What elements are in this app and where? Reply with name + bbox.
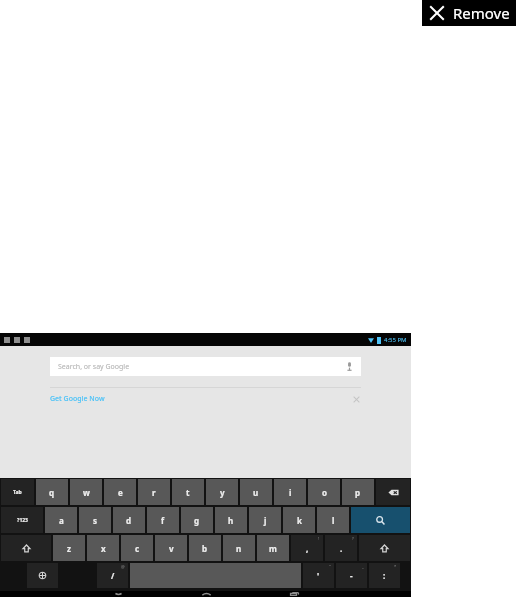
staticText: , [306,543,309,554]
staticText: d [126,515,132,526]
button[interactable]: Backspace [376,479,410,505]
button[interactable]: Change language [27,563,58,588]
button[interactable]: Hide keyboard [89,591,147,597]
staticText: - [350,570,353,581]
staticText: l [332,515,335,526]
button[interactable]: Remove [422,0,516,26]
staticText: e [118,487,123,498]
button[interactable]: / [97,563,128,588]
staticText: i [289,487,292,498]
button[interactable]: x [87,535,119,561]
staticText: y [220,487,225,498]
staticText: _ [362,564,364,569]
button[interactable]: w [70,479,102,505]
staticText: ' [317,570,320,581]
button[interactable]: Get Google Now [50,388,361,410]
button[interactable]: k [283,507,315,533]
button[interactable]: s [79,507,111,533]
staticText: " [329,564,331,569]
button[interactable]: b [189,535,221,561]
button[interactable]: n [223,535,255,561]
staticText: : [383,570,386,581]
button[interactable]: Shift [1,535,51,561]
button[interactable]: ?123 [1,507,43,533]
button[interactable]: h [215,507,247,533]
button[interactable]: m [257,535,289,561]
button[interactable]: : [369,563,400,588]
button[interactable]: e [104,479,136,505]
button[interactable]: , [291,535,323,561]
staticText: c [135,543,140,554]
staticText: x [101,543,106,554]
staticText: s [93,515,98,526]
staticText: Search, or say Google [58,362,130,372]
staticText: v [169,543,174,554]
button[interactable]: . [325,535,357,561]
button[interactable]: Home [178,591,235,597]
button[interactable]: a [45,507,77,533]
staticText: . [340,543,343,554]
staticText: u [253,487,259,498]
button[interactable]: Search, or say Google [50,357,361,376]
button[interactable]: u [240,479,272,505]
button[interactable]: Shift [359,535,410,561]
staticText: @ [121,564,125,569]
staticText: m [269,543,277,554]
staticText: f [161,515,165,526]
staticText: r [152,487,156,498]
staticText: p [355,487,361,498]
staticText: ? [352,536,354,541]
staticText: g [194,515,200,526]
button[interactable]: o [308,479,340,505]
staticText: / [111,570,115,581]
staticText: q [49,487,55,498]
staticText: * [394,564,397,569]
button[interactable]: d [113,507,145,533]
button[interactable]: y [206,479,238,505]
button[interactable]: q [36,479,68,505]
button[interactable]: l [317,507,349,533]
button[interactable]: Search [351,507,410,533]
staticText: a [59,515,64,526]
staticText: Remove [453,3,510,23]
button[interactable]: i [274,479,306,505]
staticText: z [67,543,71,554]
staticText: k [297,515,302,526]
button[interactable]: v [155,535,187,561]
button[interactable]: t [172,479,204,505]
staticText: ! [318,536,320,541]
staticText: Tab [13,489,22,496]
staticText: 4:55 PM [384,336,407,344]
button[interactable]: Recent apps [266,591,323,597]
button[interactable]: - [336,563,367,588]
other: Voice search [345,362,354,371]
staticText: w [83,487,90,498]
button[interactable]: g [181,507,213,533]
button[interactable]: Tab [1,479,34,505]
button[interactable]: f [147,507,179,533]
staticText: Get Google Now [50,394,105,404]
staticText: b [202,543,208,554]
staticText: o [322,487,327,498]
button[interactable]: z [53,535,85,561]
other: Dismiss [352,395,361,404]
button[interactable]: ' [303,563,334,588]
staticText: h [228,515,234,526]
button[interactable]: r [138,479,170,505]
staticText: n [236,543,242,554]
button[interactable]: p [342,479,374,505]
button[interactable]: j [249,507,281,533]
staticText: t [186,487,190,498]
button[interactable]: c [121,535,153,561]
staticText: ?123 [17,517,28,524]
staticText: j [264,515,267,526]
